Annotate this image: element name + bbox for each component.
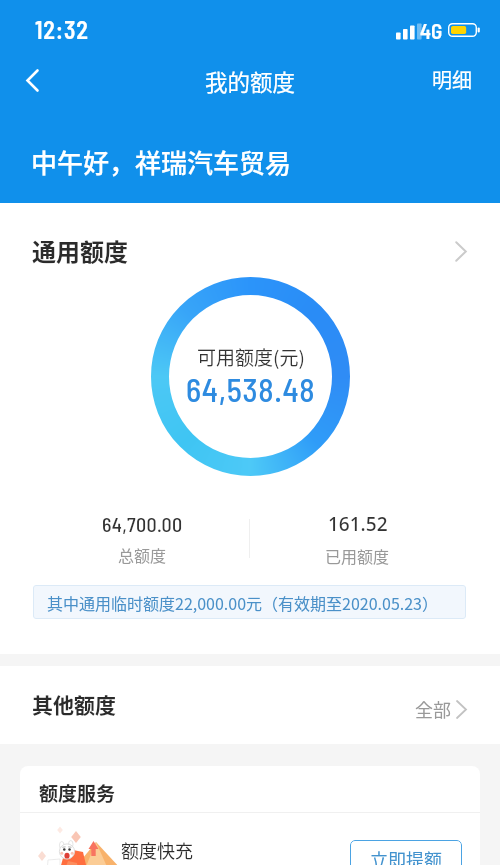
staticText: 中午好，祥瑞汽车贸易 xyxy=(31,143,292,181)
staticText: 4G xyxy=(420,18,443,43)
staticText: 可用额度(元) xyxy=(197,343,305,371)
staticText: 12:32 xyxy=(35,15,89,44)
staticText: 64,538.48 xyxy=(186,370,316,408)
staticText: 我的额度 xyxy=(205,65,296,98)
button[interactable]: 明细 xyxy=(404,55,500,104)
other: Signal strength xyxy=(396,24,420,40)
staticText: 161.52 xyxy=(328,511,388,537)
staticText: 64,700.00 xyxy=(102,512,183,536)
staticText: 总额度 xyxy=(118,543,167,566)
button[interactable]: Back xyxy=(10,58,54,102)
button[interactable]: 通用额度 xyxy=(0,203,500,275)
staticText: 已用额度 xyxy=(325,544,390,566)
button[interactable]: 其他额度 xyxy=(0,666,500,744)
staticText: 立即提额 xyxy=(370,846,442,865)
staticText: 明细 xyxy=(432,65,472,94)
staticText: 全部 xyxy=(415,696,451,722)
staticText: 通用额度 xyxy=(32,233,128,268)
staticText: 其中通用临时额度22,000.00元（有效期至2020.05.23） xyxy=(47,591,438,614)
staticText: 其他额度 xyxy=(32,689,116,719)
button[interactable]: 立即提额 xyxy=(350,840,462,865)
button[interactable]: 额度快充 xyxy=(20,813,480,865)
other: Battery xyxy=(448,23,480,39)
staticText: 额度快充 xyxy=(121,837,193,863)
staticText: 额度服务 xyxy=(39,779,116,807)
